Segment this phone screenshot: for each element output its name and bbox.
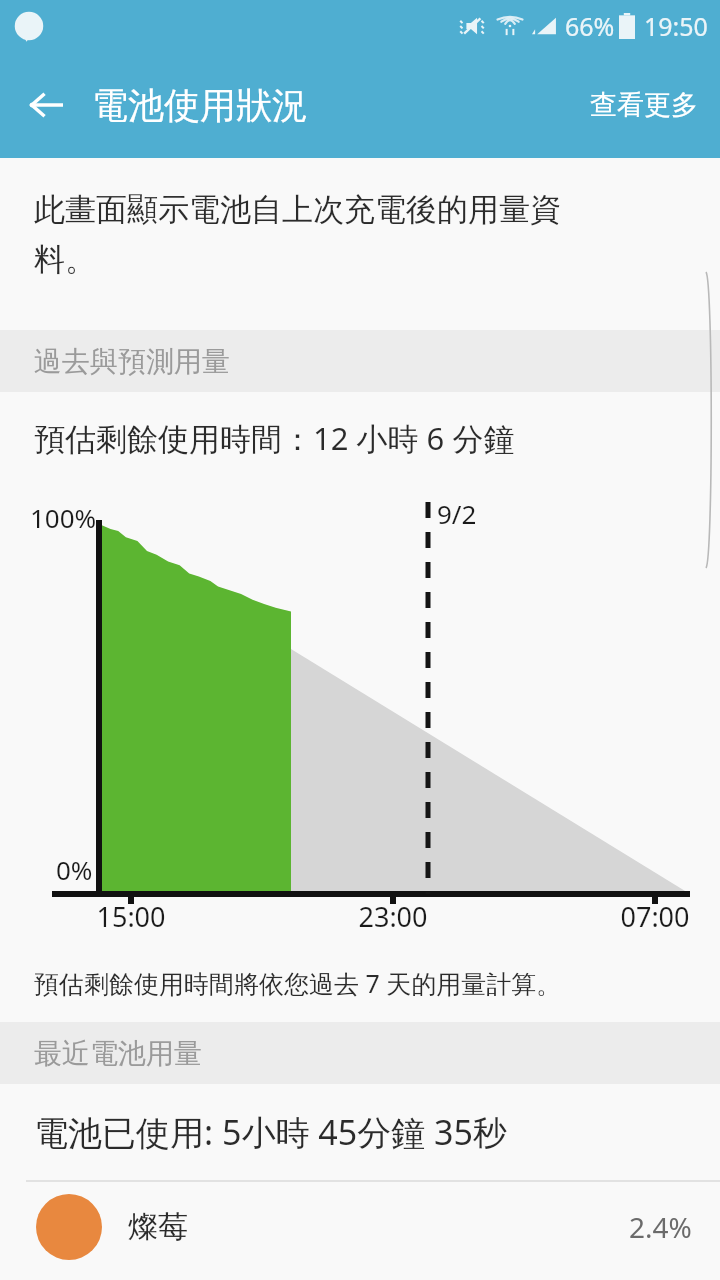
staticText: 23:00 <box>340 898 446 935</box>
staticText: 66% <box>565 9 615 43</box>
staticText: 19:50 <box>644 9 708 43</box>
staticText: 最近電池用量 <box>34 1036 202 1071</box>
staticText: 15:00 <box>78 898 184 935</box>
button[interactable]: 燦莓 <box>0 1182 720 1272</box>
staticText: 預估剩餘使用時間將依您過去 7 天的用量計算。 <box>34 966 562 1000</box>
staticText: 07:00 <box>602 898 708 935</box>
staticText: 100% <box>30 500 97 535</box>
staticText: 過去與預測用量 <box>34 344 230 379</box>
staticText: 0% <box>56 852 93 887</box>
staticText: 此畫面顯示電池自上次充電後的用量資 料。 <box>34 190 561 280</box>
staticText: 預估剩餘使用時間：12 小時 6 分鐘 <box>34 417 515 459</box>
button[interactable]: Back <box>18 77 74 133</box>
staticText: 電池使用狀況 <box>92 83 308 128</box>
staticText: 燦莓 <box>128 1208 188 1246</box>
staticText: 2.4% <box>629 1208 692 1246</box>
staticText: 9/2 <box>437 496 477 531</box>
button[interactable]: 查看更多 <box>568 70 720 140</box>
staticText: 查看更多 <box>590 88 698 122</box>
staticText: 電池已使用: 5小時 45分鐘 35秒 <box>34 1109 507 1155</box>
